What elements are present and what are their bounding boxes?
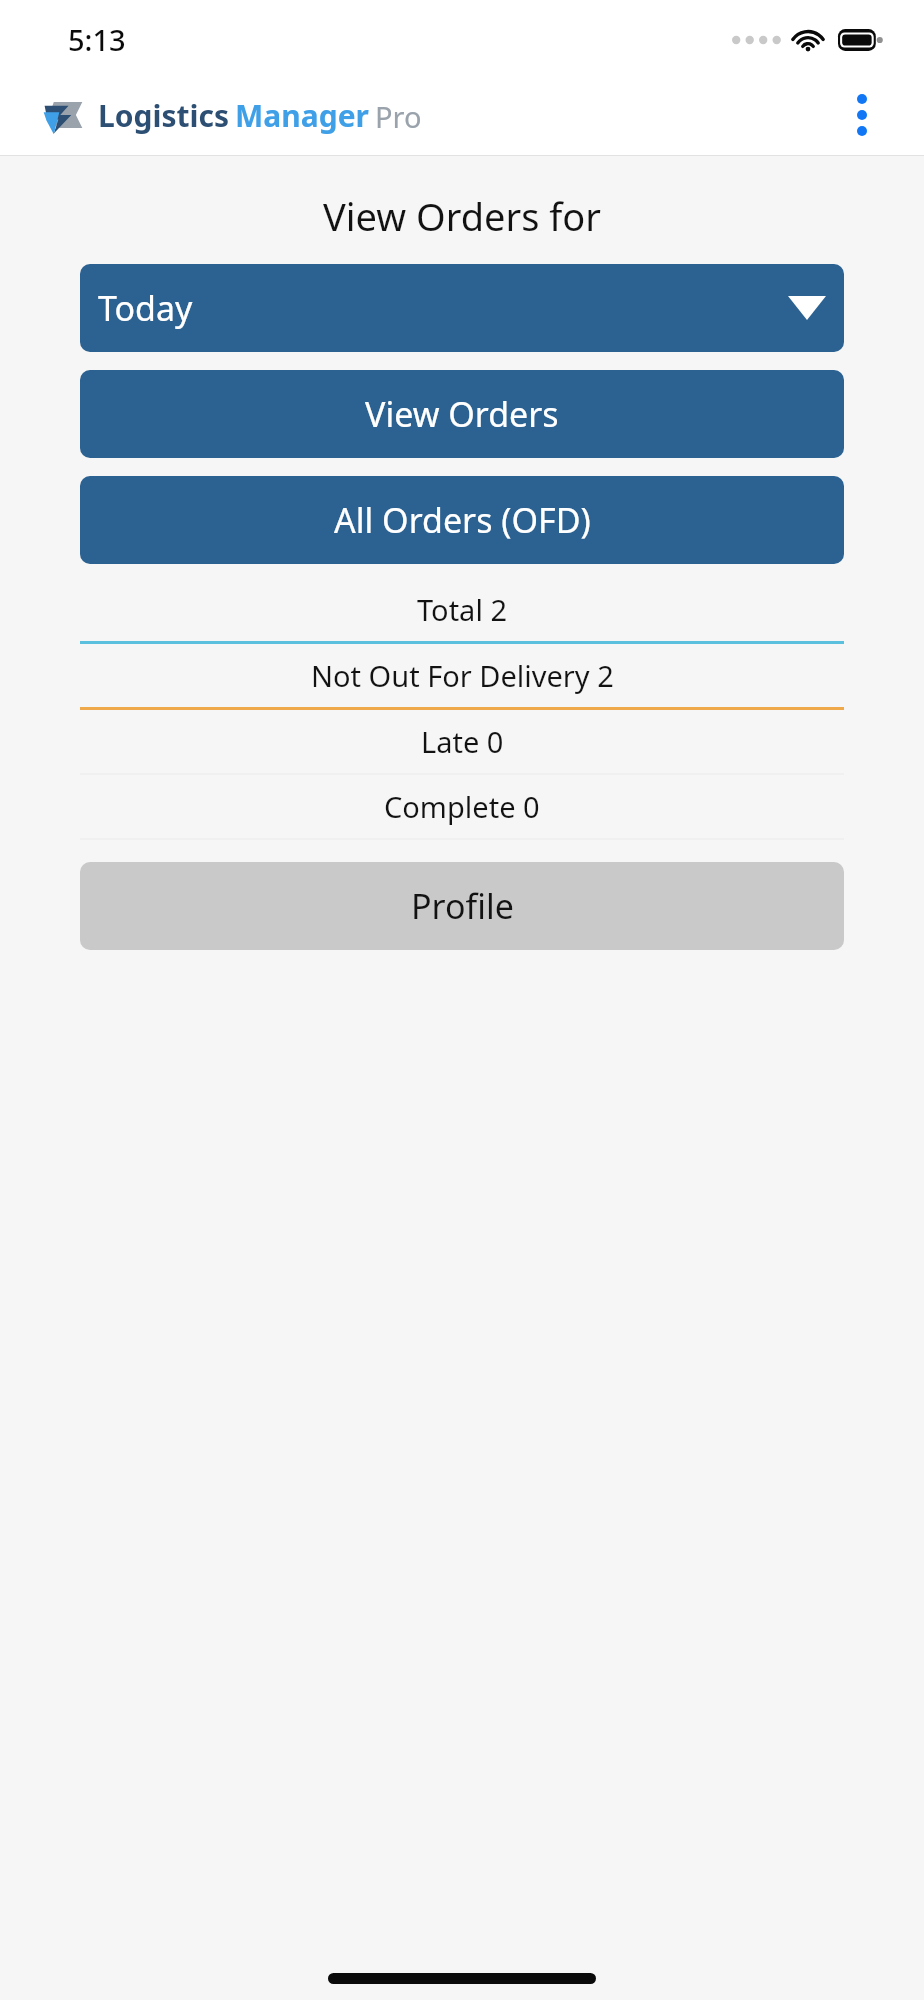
button[interactable]: View Orders	[80, 370, 844, 458]
staticText: Today	[98, 285, 788, 331]
staticText: Late 0	[421, 722, 504, 761]
staticText: Total 2	[417, 590, 507, 629]
staticText: Complete 0	[384, 787, 540, 826]
staticText: 5:13	[68, 20, 126, 59]
button[interactable]: Profile	[80, 862, 844, 950]
staticText: Manager	[235, 95, 370, 136]
staticText: Logistics	[98, 95, 230, 136]
staticText: View Orders	[365, 391, 559, 437]
staticText: Not Out For Delivery 2	[311, 656, 614, 695]
button[interactable]: Not Out For Delivery 2	[80, 644, 844, 707]
button[interactable]: All Orders (OFD)	[80, 476, 844, 564]
staticText: View Orders for	[0, 190, 924, 242]
button[interactable]: Total 2	[80, 578, 844, 641]
button[interactable]: Today	[80, 264, 844, 352]
button[interactable]: Late 0	[80, 710, 844, 773]
staticText: Profile	[411, 883, 514, 929]
button[interactable]: Complete 0	[80, 775, 844, 838]
staticText: All Orders (OFD)	[334, 497, 591, 543]
staticText: Pro	[375, 97, 422, 136]
button[interactable]: More options	[830, 83, 894, 147]
